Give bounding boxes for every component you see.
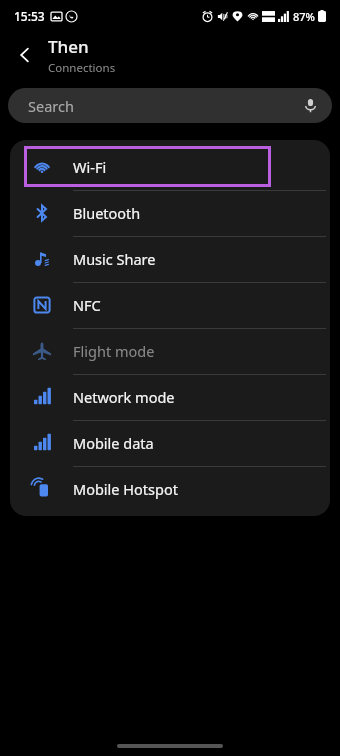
staticText: Then <box>48 35 89 58</box>
button[interactable]: Network mode <box>10 374 330 420</box>
staticText: Music Share <box>73 249 156 269</box>
button[interactable]: Flight mode <box>10 328 330 374</box>
staticText: NFC <box>73 295 101 315</box>
other: Voice search <box>303 98 318 113</box>
button[interactable]: Mobile Hotspot <box>10 466 330 512</box>
button[interactable]: Music Share <box>10 236 330 282</box>
staticText: Bluetooth <box>73 203 141 223</box>
staticText: Mobile data <box>73 433 154 453</box>
button[interactable]: Search <box>8 88 332 123</box>
staticText: Network mode <box>73 387 175 407</box>
button[interactable]: NFC <box>10 282 330 328</box>
staticText: Flight mode <box>73 341 155 361</box>
button[interactable]: Bluetooth <box>10 190 330 236</box>
staticText: 87% <box>293 9 315 24</box>
button[interactable]: Wi-Fi <box>10 144 330 190</box>
staticText: Mobile Hotspot <box>73 479 178 499</box>
staticText: Connections <box>48 60 116 76</box>
button[interactable]: Mobile data <box>10 420 330 466</box>
button[interactable]: Back <box>8 38 42 72</box>
staticText: Wi-Fi <box>73 157 107 177</box>
staticText: Search <box>28 96 74 116</box>
staticText: 15:53 <box>14 8 45 24</box>
